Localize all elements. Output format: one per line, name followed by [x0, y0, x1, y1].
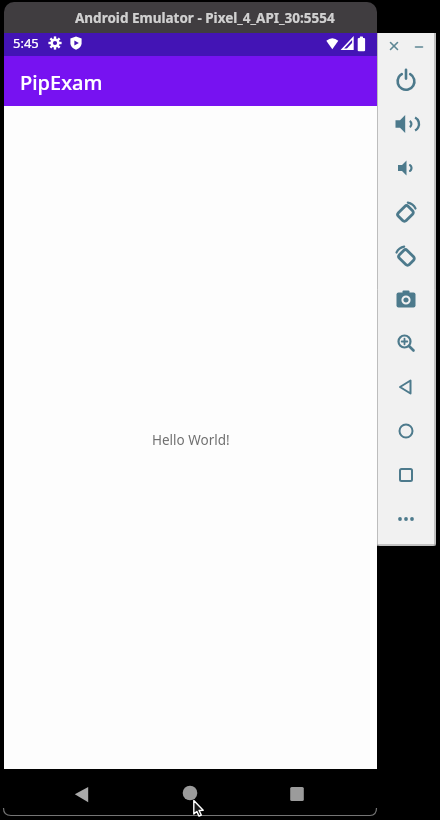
- button[interactable]: [392, 242, 420, 270]
- button[interactable]: [282, 779, 312, 809]
- staticText: 5:45: [13, 34, 39, 52]
- button[interactable]: [392, 417, 420, 445]
- button[interactable]: [66, 779, 96, 809]
- button[interactable]: [392, 110, 420, 138]
- button[interactable]: [392, 505, 420, 533]
- button[interactable]: [392, 373, 420, 401]
- button[interactable]: [392, 286, 420, 314]
- button[interactable]: [392, 329, 420, 357]
- button[interactable]: [175, 778, 205, 808]
- button[interactable]: [411, 38, 427, 54]
- button[interactable]: [392, 67, 420, 95]
- staticText: PipExam: [20, 69, 103, 96]
- button[interactable]: [392, 154, 420, 182]
- button[interactable]: [386, 38, 402, 54]
- staticText: Hello World!: [152, 431, 230, 449]
- button[interactable]: [392, 461, 420, 489]
- staticText: Android Emulator - Pixel_4_API_30:5554: [75, 9, 335, 27]
- button[interactable]: [392, 198, 420, 226]
